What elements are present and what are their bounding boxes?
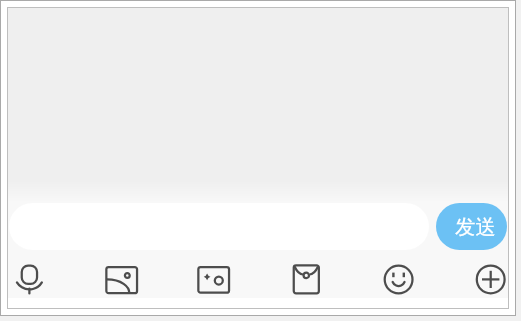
button[interactable]: Voice message [6,256,52,302]
button[interactable]: Red packet [283,256,329,302]
button[interactable]: Camera [191,256,237,302]
staticText: 发送 [455,214,496,240]
button[interactable]: Emoji [376,256,422,302]
button[interactable]: More [468,256,514,302]
button[interactable]: Album [99,256,145,302]
button[interactable]: 发送 [436,203,507,250]
